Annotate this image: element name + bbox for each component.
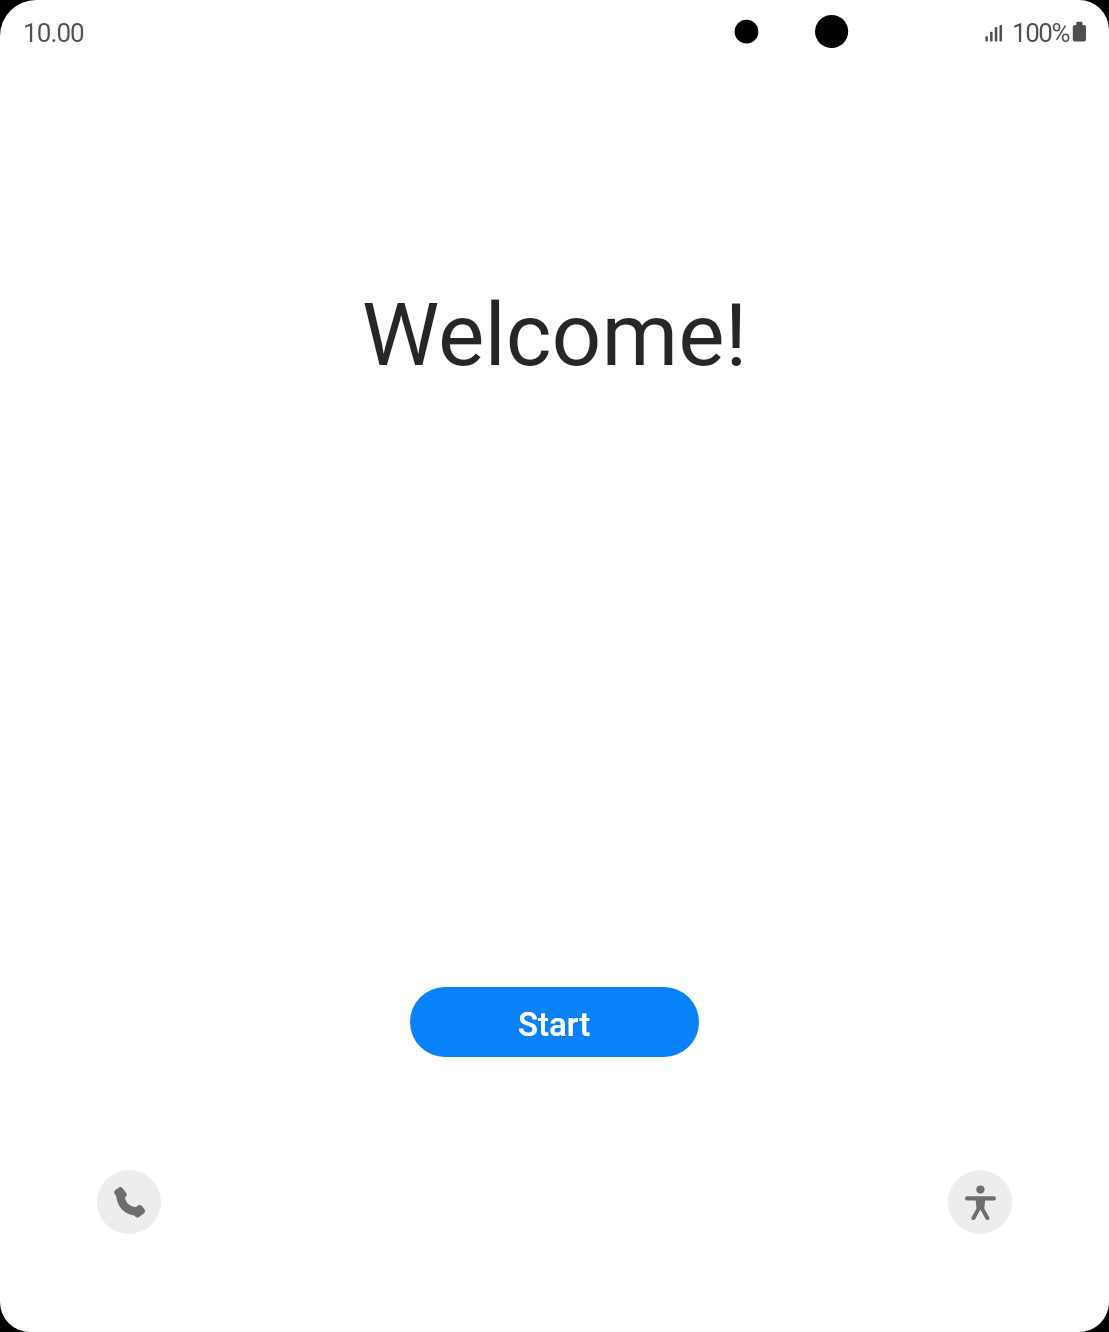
button[interactable]: Start	[410, 987, 699, 1057]
staticText: 100%	[1012, 18, 1070, 48]
staticText: Welcome!	[0, 284, 1109, 387]
staticText: Start	[518, 1005, 591, 1044]
button[interactable]: Accessibility	[948, 1170, 1012, 1234]
button[interactable]: Call	[97, 1170, 161, 1234]
staticText: 10.00	[23, 18, 84, 48]
